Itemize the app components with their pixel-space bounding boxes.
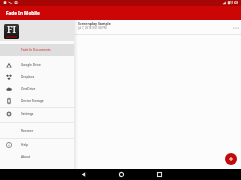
button[interactable]: Recent apps	[154, 169, 164, 180]
staticText: Dropbox	[21, 75, 35, 79]
button[interactable]: Settings	[0, 108, 74, 120]
staticText: Jul 7, 2018 9:51:58 PM	[78, 26, 107, 30]
staticText: Recover	[21, 129, 34, 133]
staticText: Settings	[21, 112, 34, 116]
staticText: 11:03	[230, 1, 239, 5]
button[interactable]: Fade In Documents	[0, 44, 74, 56]
staticText: Fade In Documents	[21, 48, 51, 52]
button[interactable]: Home	[116, 169, 126, 180]
staticText: Google Drive	[21, 63, 41, 67]
button[interactable]: New document	[225, 153, 237, 165]
staticText: Screenplay Sample	[78, 21, 111, 26]
staticText: Help	[21, 143, 29, 147]
staticText: About	[21, 155, 31, 159]
button[interactable]: Back	[78, 169, 88, 180]
button[interactable]: Device Storage	[0, 95, 74, 107]
button[interactable]: Dropbox	[0, 71, 74, 83]
staticText: OneDrive	[21, 87, 36, 91]
button[interactable]: OneDrive	[0, 83, 74, 95]
button[interactable]: Google Drive	[0, 59, 74, 71]
button[interactable]: About	[0, 151, 74, 163]
button[interactable]: Recover	[0, 125, 74, 137]
staticText: FI	[7, 24, 17, 36]
staticText: Device Storage	[21, 99, 44, 103]
button[interactable]: Screenplay Sample	[74, 20, 241, 34]
button[interactable]: More options	[231, 23, 240, 32]
button[interactable]: Help	[0, 139, 74, 151]
staticText: Fade In Mobile	[6, 10, 40, 16]
